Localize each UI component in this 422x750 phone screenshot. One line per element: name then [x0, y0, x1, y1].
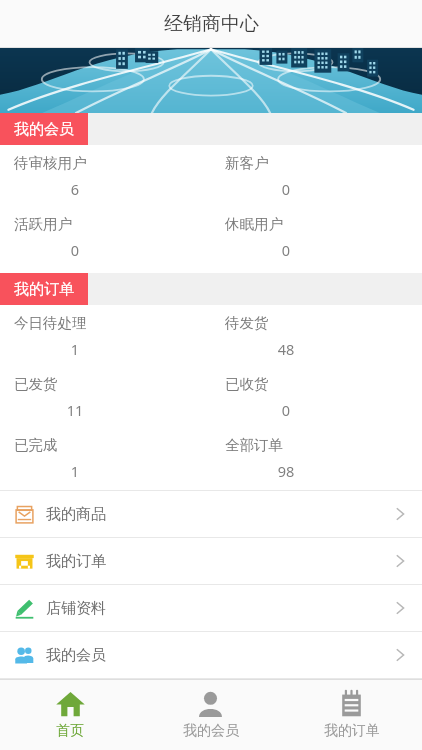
button[interactable]: 休眠用户	[211, 206, 422, 267]
staticText: 经销商中心	[164, 12, 259, 36]
staticText: 今日待处理	[14, 314, 87, 332]
staticText: 1	[14, 339, 136, 359]
button[interactable]: 新客户	[211, 145, 422, 206]
button[interactable]: 待审核用户	[0, 145, 211, 206]
button[interactable]: 今日待处理	[0, 305, 211, 366]
staticText: 活跃用户	[14, 215, 72, 233]
staticText: 1	[14, 461, 136, 481]
staticText: 98	[225, 461, 347, 481]
staticText: 待发货	[225, 314, 269, 332]
button[interactable]: 我的会员	[140, 680, 281, 750]
staticText: 我的订单	[14, 280, 74, 299]
staticText: 我的订单	[324, 722, 380, 740]
button[interactable]: 全部订单	[211, 427, 422, 488]
button[interactable]: 我的会员	[0, 632, 422, 678]
staticText: 已完成	[14, 436, 58, 454]
button[interactable]: 首页	[0, 680, 140, 750]
staticText: 全部订单	[225, 436, 283, 454]
staticText: 已发货	[14, 375, 58, 393]
staticText: 店铺资料	[46, 599, 106, 618]
staticText: 我的会员	[183, 722, 239, 740]
staticText: 0	[225, 240, 347, 260]
staticText: 0	[225, 179, 347, 199]
staticText: 我的会员	[14, 120, 74, 139]
staticText: 0	[225, 400, 347, 420]
button[interactable]: 我的订单	[281, 680, 422, 750]
staticText: 新客户	[225, 154, 269, 172]
button[interactable]: 已完成	[0, 427, 211, 488]
staticText: 待审核用户	[14, 154, 87, 172]
button[interactable]: 已发货	[0, 366, 211, 427]
staticText: 6	[14, 179, 136, 199]
staticText: 0	[14, 240, 136, 260]
button[interactable]: 待发货	[211, 305, 422, 366]
staticText: 休眠用户	[225, 215, 283, 233]
staticText: 已收货	[225, 375, 269, 393]
button[interactable]: 我的订单	[0, 538, 422, 584]
button[interactable]: 我的商品	[0, 491, 422, 537]
button[interactable]: 店铺资料	[0, 585, 422, 631]
staticText: 48	[225, 339, 347, 359]
staticText: 我的商品	[46, 505, 106, 524]
staticText: 首页	[56, 722, 84, 740]
staticText: 11	[14, 400, 136, 420]
button[interactable]: 已收货	[211, 366, 422, 427]
button[interactable]: 活跃用户	[0, 206, 211, 267]
staticText: 我的订单	[46, 552, 106, 571]
staticText: 我的会员	[46, 646, 106, 665]
